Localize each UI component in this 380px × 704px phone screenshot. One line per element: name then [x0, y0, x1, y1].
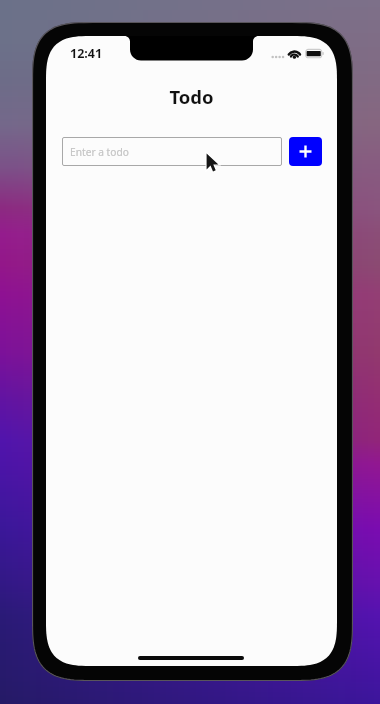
staticText: Todo — [46, 84, 337, 109]
button[interactable]: Enter a todo — [62, 137, 282, 166]
staticText: Enter a todo — [70, 145, 129, 159]
staticText: 12:41 — [70, 45, 103, 62]
button[interactable]: Add todo — [289, 137, 322, 166]
